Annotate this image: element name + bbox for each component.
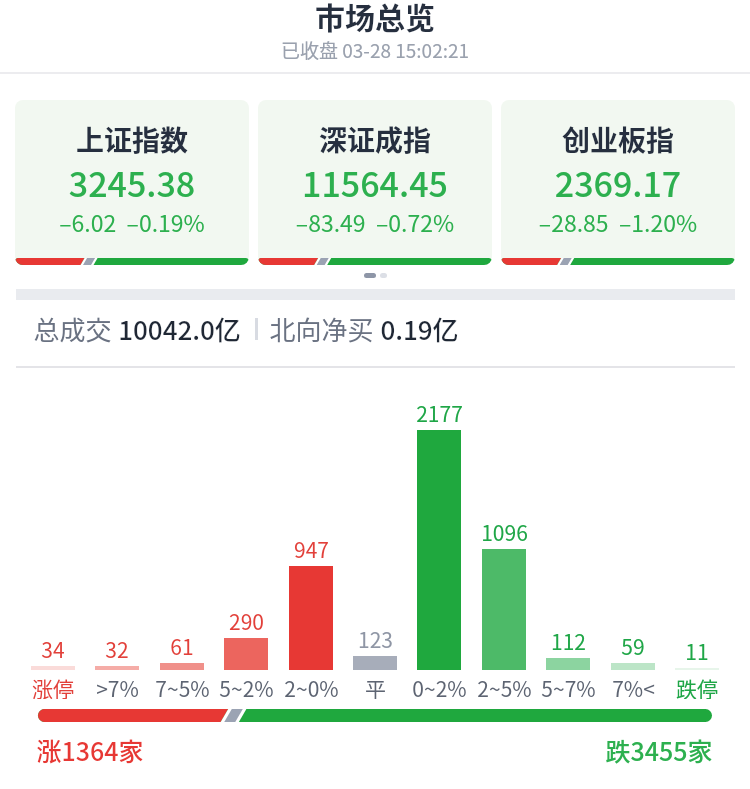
staticText: 7%<: [612, 673, 655, 699]
staticText: 290: [229, 606, 264, 634]
staticText: 5~7%: [541, 673, 596, 699]
button[interactable]: 平: [340, 673, 410, 699]
staticText: 1096: [481, 517, 528, 545]
staticText: 10042.0亿: [118, 310, 241, 348]
button[interactable]: 7%<: [598, 673, 668, 699]
staticText: 112: [551, 626, 586, 654]
button[interactable]: 上证指数: [15, 100, 249, 265]
staticText: 34: [41, 634, 65, 662]
button[interactable]: 2~5%: [469, 673, 539, 699]
staticText: 2~0%: [284, 673, 339, 699]
staticText: 7~5%: [155, 673, 210, 699]
staticText: –83.49 –0.72%: [258, 205, 492, 238]
button[interactable]: 涨停: [18, 673, 88, 699]
staticText: 32: [105, 634, 129, 662]
staticText: 3245.38: [15, 158, 249, 207]
staticText: 2~5%: [477, 673, 532, 699]
button[interactable]: 0~2%: [404, 673, 474, 699]
staticText: 已收盘 03-28 15:02:21: [0, 36, 750, 64]
button[interactable]: 跌停: [662, 673, 732, 699]
staticText: 市场总览: [0, 0, 750, 37]
staticText: 123: [358, 624, 393, 652]
staticText: 11564.45: [258, 158, 492, 207]
staticText: 涨1364家: [36, 732, 144, 768]
button[interactable]: 5~2%: [211, 673, 281, 699]
staticText: 0~2%: [412, 673, 467, 699]
staticText: 深证成指: [258, 119, 492, 160]
staticText: 2369.17: [501, 158, 735, 207]
staticText: 5~2%: [219, 673, 274, 699]
staticText: 总成交: [33, 310, 112, 348]
staticText: >7%: [96, 673, 139, 699]
staticText: 涨停: [32, 673, 74, 699]
staticText: 北向净买: [269, 310, 374, 348]
button[interactable]: 总成交: [33, 310, 459, 348]
staticText: –28.85 –1.20%: [501, 205, 735, 238]
staticText: 上证指数: [15, 119, 249, 160]
staticText: 2177: [416, 398, 463, 426]
staticText: 平: [365, 673, 386, 699]
button[interactable]: 2~0%: [276, 673, 346, 699]
staticText: –6.02 –0.19%: [15, 205, 249, 238]
staticText: 61: [170, 631, 194, 659]
button[interactable]: 7~5%: [147, 673, 217, 699]
staticText: 947: [294, 534, 329, 562]
staticText: 0.19亿: [380, 310, 459, 348]
button[interactable]: 5~7%: [533, 673, 603, 699]
staticText: 跌停: [676, 673, 718, 699]
button[interactable]: 深证成指: [258, 100, 492, 265]
button[interactable]: 创业板指: [501, 100, 735, 265]
staticText: 11: [685, 636, 709, 664]
button[interactable]: >7%: [82, 673, 152, 699]
staticText: 59: [621, 631, 645, 659]
staticText: 跌3455家: [605, 732, 713, 768]
staticText: 创业板指: [501, 119, 735, 160]
